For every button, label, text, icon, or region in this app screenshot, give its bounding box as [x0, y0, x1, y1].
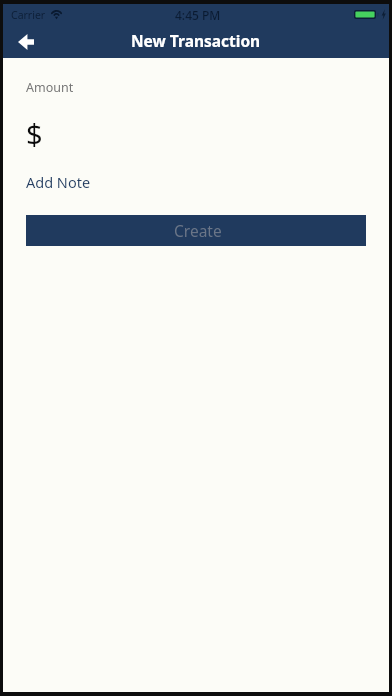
staticText: New Transaction — [131, 30, 261, 51]
staticText: Create — [174, 220, 222, 241]
button[interactable]: Create — [26, 215, 366, 246]
staticText: Add Note — [26, 172, 91, 192]
button[interactable]: Back — [10, 26, 42, 58]
staticText: 4:45 PM — [175, 7, 221, 23]
button[interactable]: Add Note — [26, 172, 91, 192]
staticText: Amount — [26, 79, 74, 96]
staticText: Carrier — [11, 8, 46, 22]
staticText: $ — [26, 114, 43, 153]
